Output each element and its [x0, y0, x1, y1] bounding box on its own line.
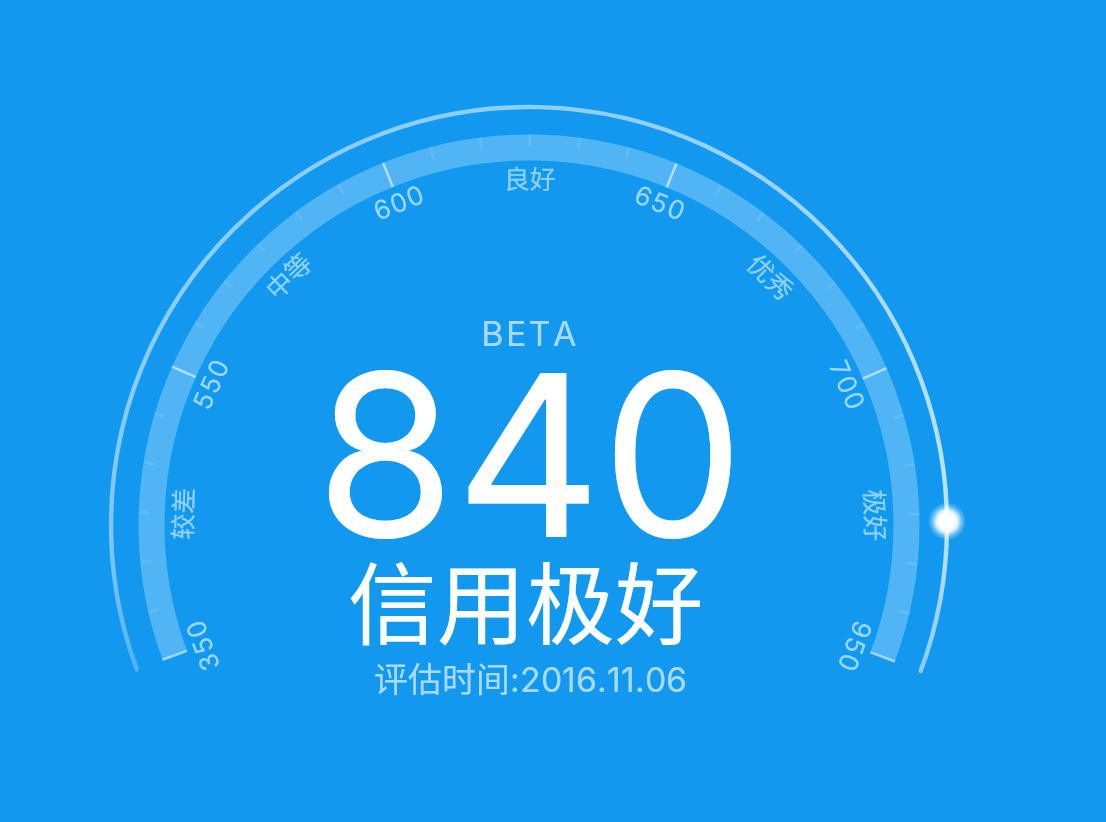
button[interactable]: 芝麻信用分 840,信用极好,评估时间 2016.11.06: [0, 0, 1106, 822]
